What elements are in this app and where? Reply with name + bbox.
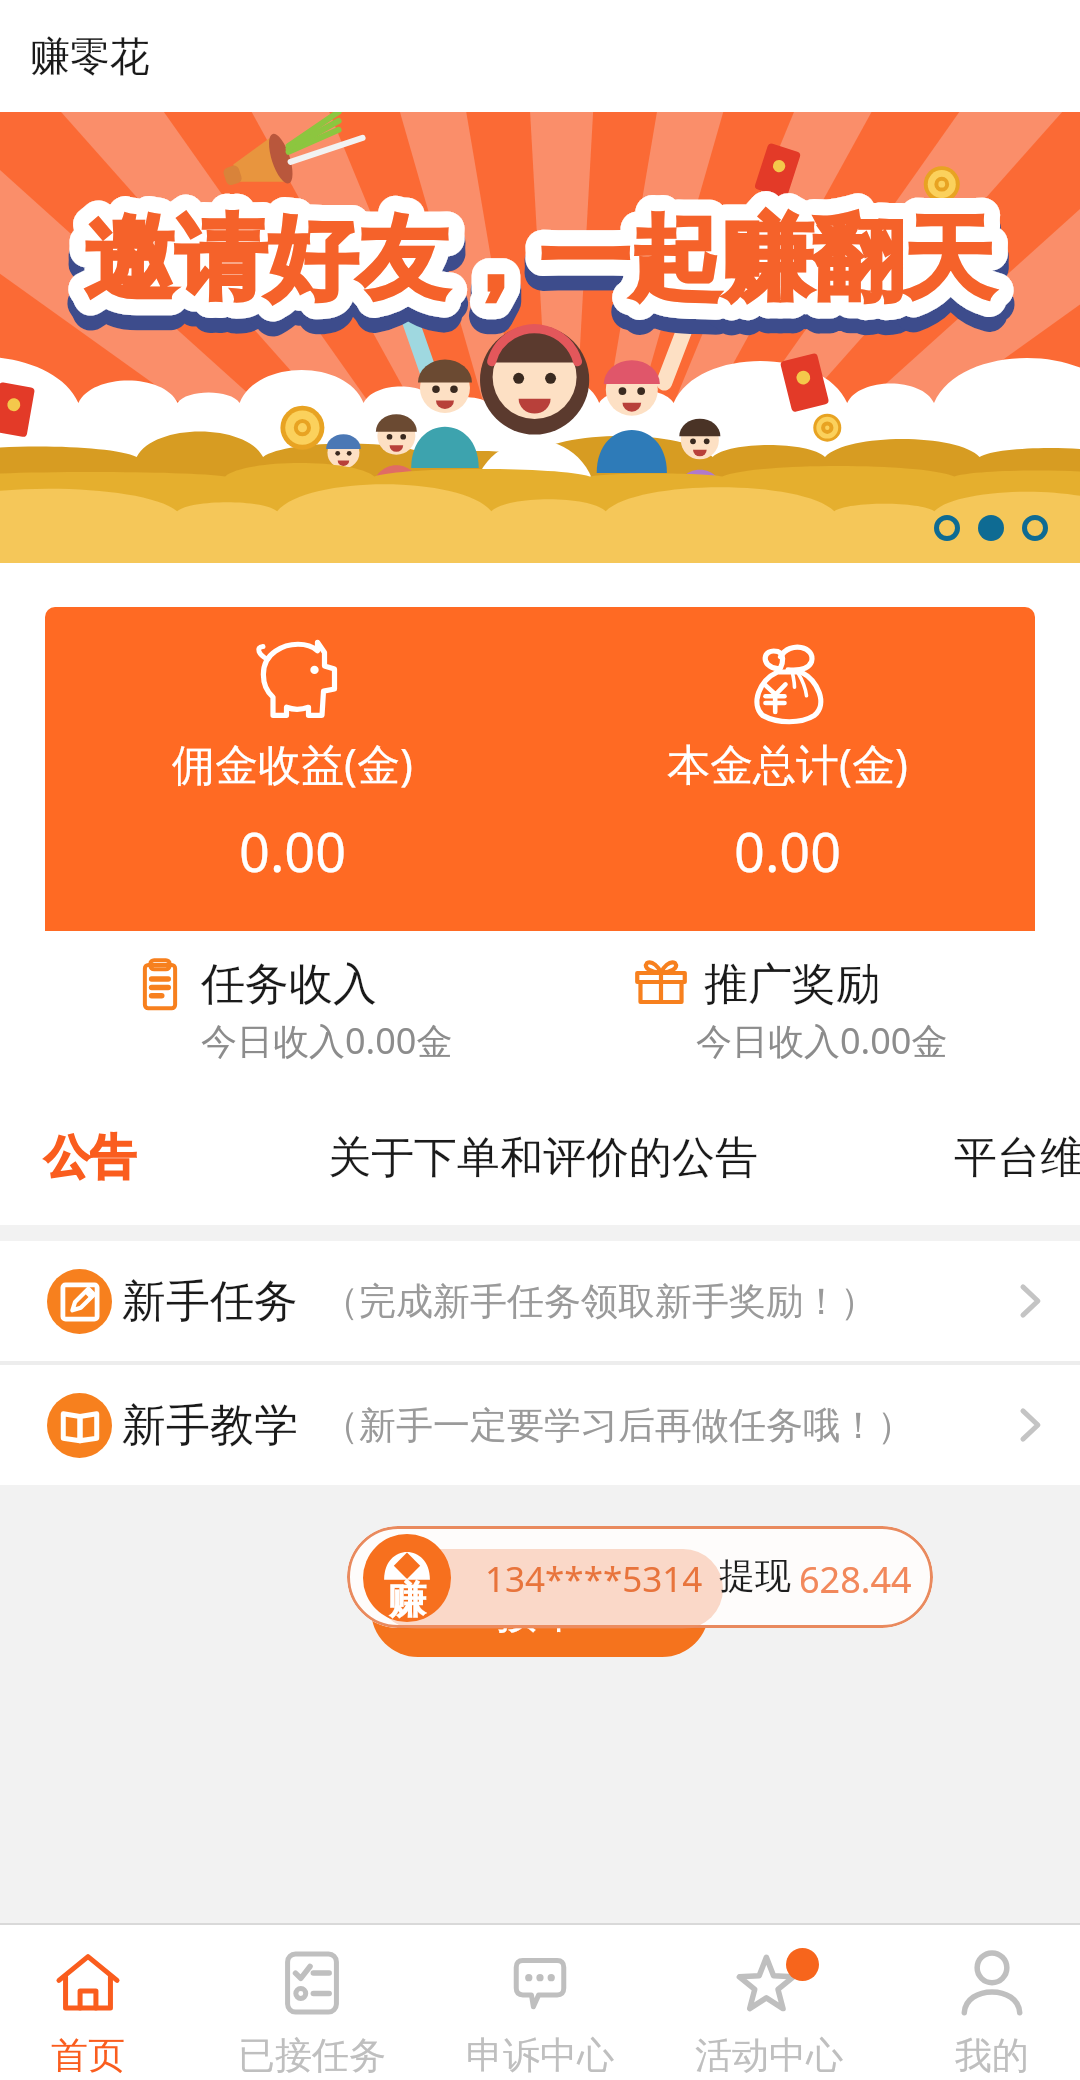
staticText: 我的	[955, 2032, 1029, 2079]
staticText: （完成新手任务领取新手奖励！）	[322, 1278, 877, 1325]
staticText: 今日收入0.00金	[201, 1016, 453, 1065]
staticText: 公告	[44, 1129, 136, 1187]
staticText: （新手一定要学习后再做任务哦！）	[322, 1402, 914, 1449]
button[interactable]: 接单	[371, 1563, 709, 1657]
staticText: 628.44	[799, 1555, 912, 1604]
button[interactable]: 申诉中心	[447, 1925, 633, 2080]
staticText: 本金总计(金)	[667, 734, 908, 793]
button[interactable]: 公告	[0, 1091, 1080, 1225]
staticText: 赚	[388, 1576, 426, 1622]
staticText: 新手教学	[122, 1398, 298, 1453]
staticText: 赚零花	[30, 31, 150, 81]
button[interactable]: 活动中心	[676, 1925, 862, 2080]
button[interactable]: 佣金收益(金)	[45, 607, 540, 931]
button[interactable]: 已接任务	[219, 1925, 405, 2080]
staticText: 提现	[719, 1553, 791, 1598]
button[interactable]: 推广奖励	[540, 931, 1035, 1091]
staticText: 任务收入	[201, 957, 377, 1012]
staticText: 首页	[51, 2032, 125, 2079]
staticText: 已接任务	[238, 2032, 386, 2079]
staticText: 关于下单和评价的公告	[328, 1131, 758, 1185]
button[interactable]: 新手教学	[0, 1365, 1080, 1485]
staticText: 邀请好友，一起赚翻天	[84, 202, 994, 317]
button[interactable]	[347, 1526, 933, 1628]
staticText: 接单	[496, 1587, 580, 1640]
staticText: 推广奖励	[704, 957, 880, 1012]
button[interactable]: 首页	[0, 1925, 176, 2080]
staticText: 申诉中心	[466, 2032, 614, 2079]
staticText: 邀请好友，一起赚翻天	[84, 216, 994, 331]
button[interactable]: 任务收入	[45, 931, 540, 1091]
button[interactable]: 本金总计(金)	[540, 607, 1035, 931]
other: App logo	[363, 1534, 451, 1622]
staticText: 134****5314	[485, 1555, 703, 1603]
staticText: 活动中心	[695, 2032, 843, 2079]
button[interactable]: 新手任务	[0, 1241, 1080, 1361]
staticText: 邀请好友，一起赚翻天	[84, 202, 994, 317]
staticText: 今日收入0.00金	[696, 1016, 948, 1065]
staticText: 新手任务	[122, 1274, 298, 1329]
button[interactable]: 我的	[904, 1925, 1080, 2080]
staticText: 平台维护公告	[954, 1131, 1080, 1185]
staticText: 0.00	[734, 814, 842, 888]
staticText: 0.00	[239, 814, 347, 888]
staticText: 佣金收益(金)	[172, 734, 413, 793]
